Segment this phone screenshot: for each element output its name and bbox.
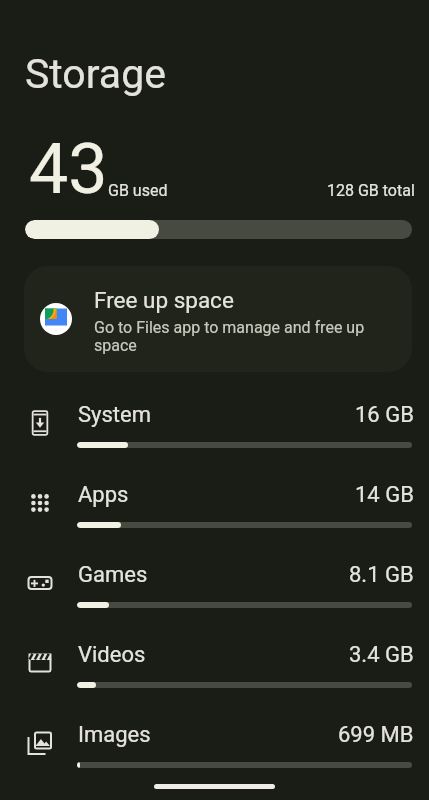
staticText: Videos xyxy=(78,642,146,668)
staticText: Games xyxy=(78,562,148,588)
staticText: Go to Files app to manage and free up sp… xyxy=(94,318,372,355)
button[interactable]: Files app xyxy=(24,266,412,372)
staticText: Apps xyxy=(78,482,129,508)
button[interactable]: Videos xyxy=(0,640,429,720)
staticText: 16 GB xyxy=(355,402,414,428)
staticText: 128 GB total xyxy=(327,181,415,200)
staticText: 3.4 GB xyxy=(349,642,414,668)
button[interactable]: System xyxy=(0,400,429,480)
staticText: Images xyxy=(78,722,151,748)
staticText: Free up space xyxy=(94,287,234,313)
button[interactable]: Images xyxy=(0,720,429,800)
staticText: 699 MB xyxy=(338,722,414,748)
other: Files app xyxy=(40,303,72,335)
button[interactable]: Apps xyxy=(0,480,429,560)
staticText: 8.1 GB xyxy=(349,562,414,588)
staticText: 43 xyxy=(29,128,108,210)
staticText: System xyxy=(78,402,151,428)
staticText: GB used xyxy=(108,181,168,200)
staticText: 14 GB xyxy=(355,482,414,508)
button[interactable]: Games xyxy=(0,560,429,640)
staticText: Storage xyxy=(25,50,166,98)
